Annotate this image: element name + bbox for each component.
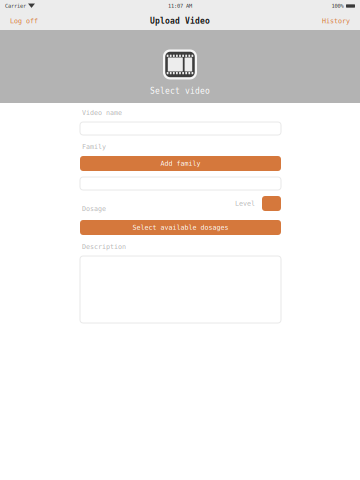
staticText: Carrier — [5, 3, 26, 9]
staticText: 100% — [331, 3, 343, 9]
staticText: Add family — [160, 160, 200, 167]
button[interactable]: History — [318, 13, 354, 29]
staticText: Dosage — [82, 205, 106, 213]
button[interactable]: Select video — [120, 45, 240, 99]
staticText: Upload Video — [150, 16, 210, 26]
staticText: Select video — [150, 86, 210, 96]
staticText: Description — [82, 243, 126, 251]
button[interactable]: Level — [262, 196, 281, 211]
staticText: Level — [235, 200, 255, 207]
staticText: 11:07 AM — [168, 3, 192, 9]
staticText: Select available dosages — [132, 224, 228, 231]
staticText: History — [322, 17, 350, 25]
button[interactable]: Log off — [6, 13, 42, 29]
button[interactable]: Select available dosages — [80, 220, 281, 235]
button[interactable]: Add family — [80, 156, 281, 171]
staticText: Family — [82, 143, 106, 151]
staticText: Log off — [10, 17, 38, 25]
staticText: Video name — [82, 109, 122, 117]
